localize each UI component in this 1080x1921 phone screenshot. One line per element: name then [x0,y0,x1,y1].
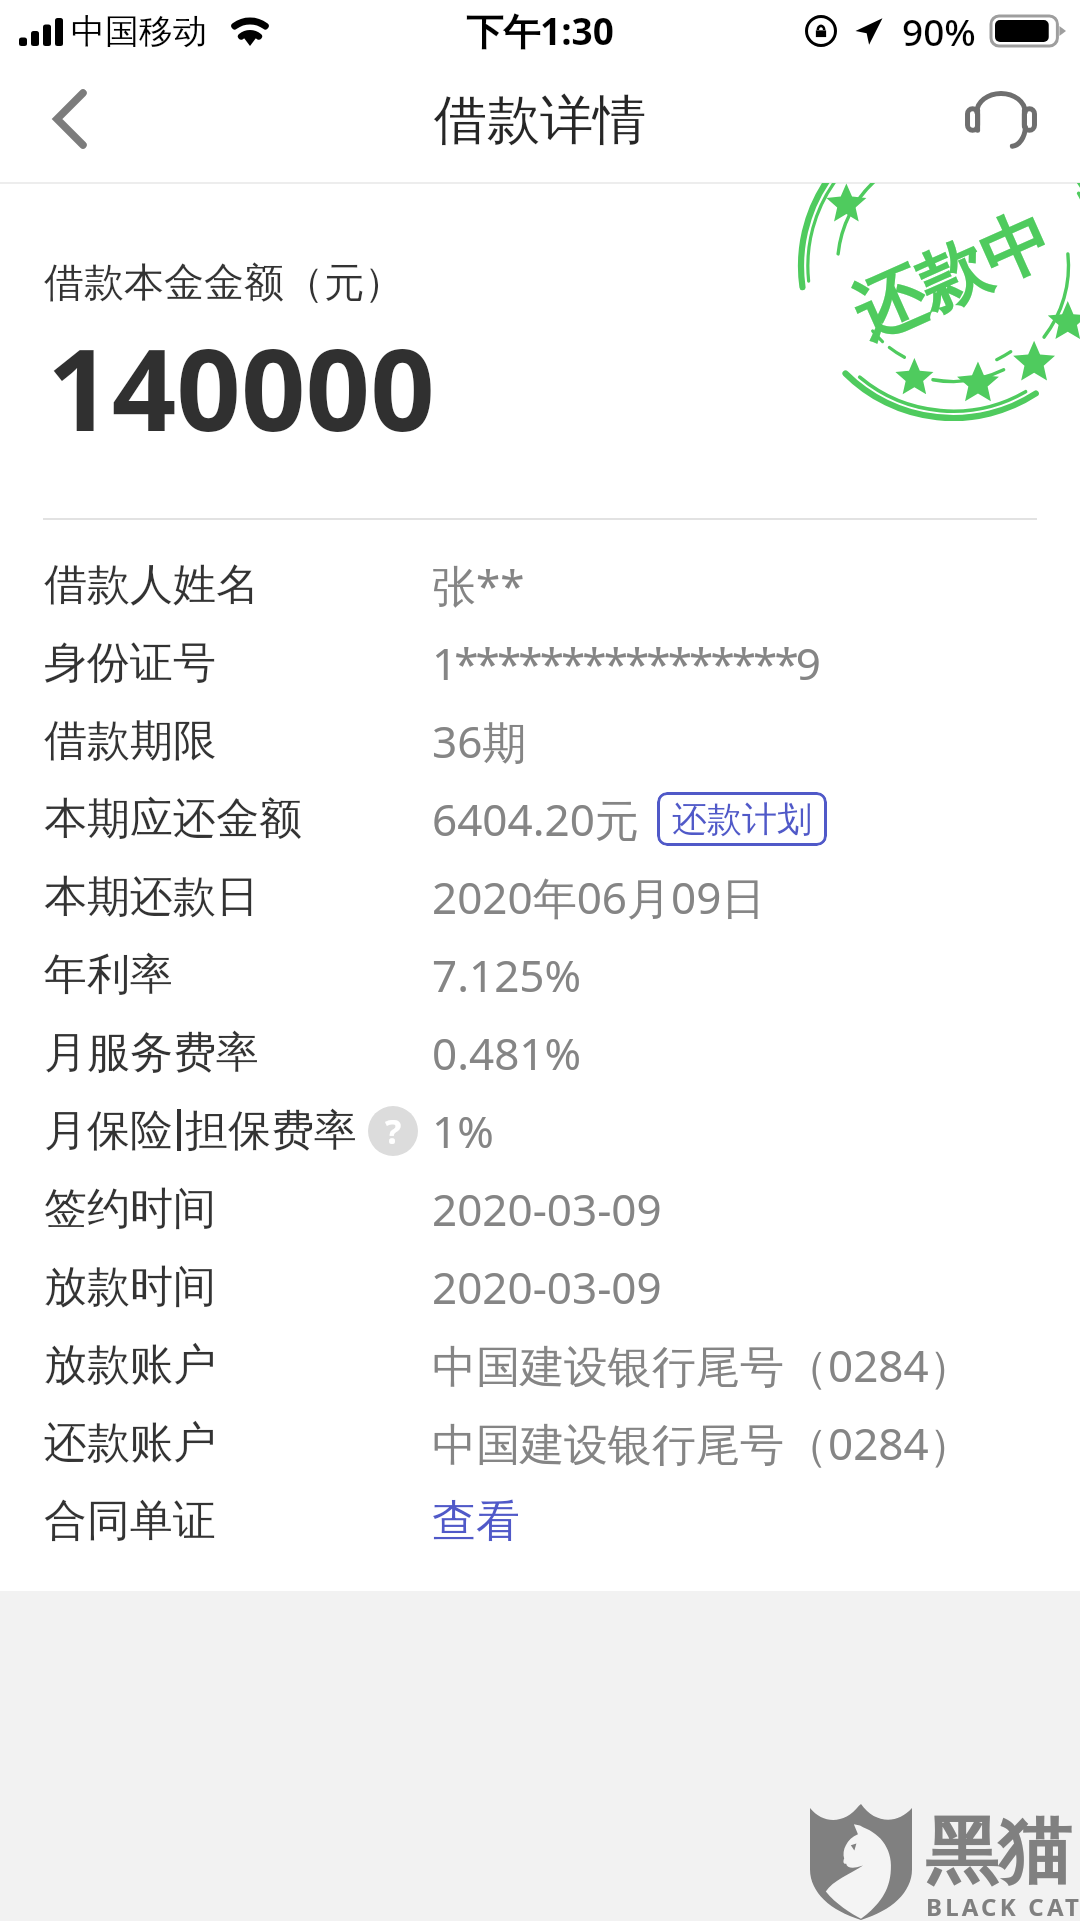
staticText: 7.125% [432,945,582,1005]
staticText: 中国移动 [71,10,207,53]
staticText: 放款账户 [44,1338,216,1392]
staticText: 年利率 [44,948,173,1002]
button[interactable]: 借款人姓名 [0,546,1080,624]
staticText: 0.481% [432,1023,582,1083]
staticText: 张** [432,555,525,615]
button[interactable]: 签约时间 [0,1170,1080,1248]
staticText: 身份证号 [44,636,216,690]
staticText: 36期 [432,711,527,771]
button[interactable]: 还款计划 [657,792,827,846]
staticText: 2020-03-09 [432,1179,662,1239]
staticText: 担保费率 [185,1104,357,1158]
staticText: 借款本金金额（元） [44,257,404,307]
button[interactable]: 月保险 [0,1092,1080,1170]
staticText: 1****************9 [432,633,819,693]
button[interactable]: Customer service [930,62,1080,175]
button[interactable]: 合同单证 [0,1482,1080,1560]
staticText: 6404.20元 [432,789,639,849]
staticText: 中国建设银行尾号（0284） [432,1413,973,1473]
staticText: 本期还款日 [44,870,259,924]
staticText: 下午1:30 [466,5,614,56]
button[interactable]: 还款账户 [0,1404,1080,1482]
staticText: 查看 [432,1494,520,1549]
button[interactable]: 查看 [432,1494,520,1549]
button[interactable]: 年利率 [0,936,1080,1014]
staticText: 借款详情 [434,87,646,154]
button[interactable]: Help [368,1106,418,1156]
staticText: 140000 [47,310,435,464]
staticText: 黑猫 [925,1806,1071,1898]
staticText: 还款中 [840,195,1065,358]
staticText: 2020-03-09 [432,1257,662,1317]
staticText: 借款人姓名 [44,558,259,612]
button[interactable]: 本期应还金额 [0,780,1080,858]
staticText: 月保险 [44,1104,173,1158]
button[interactable]: 借款期限 [0,702,1080,780]
staticText: 中国建设银行尾号（0284） [432,1335,973,1395]
staticText: 签约时间 [44,1182,216,1236]
button[interactable]: 放款账户 [0,1326,1080,1404]
button[interactable]: 本期还款日 [0,858,1080,936]
staticText: 放款时间 [44,1260,216,1314]
button[interactable]: 身份证号 [0,624,1080,702]
button[interactable]: Back [0,62,140,175]
staticText: ? [385,1108,402,1154]
staticText: 还款账户 [44,1416,216,1470]
staticText: 本期应还金额 [44,792,302,846]
staticText: 还款计划 [672,797,812,841]
staticText: 借款期限 [44,714,216,768]
staticText: 1% [432,1101,494,1161]
staticText: 90% [902,6,976,56]
button[interactable]: 放款时间 [0,1248,1080,1326]
button[interactable]: 月服务费率 [0,1014,1080,1092]
staticText: BLACK CAT [926,1890,1080,1921]
staticText: 合同单证 [44,1494,216,1548]
staticText: 2020年06月09日 [432,867,766,927]
staticText: 月服务费率 [44,1026,259,1080]
